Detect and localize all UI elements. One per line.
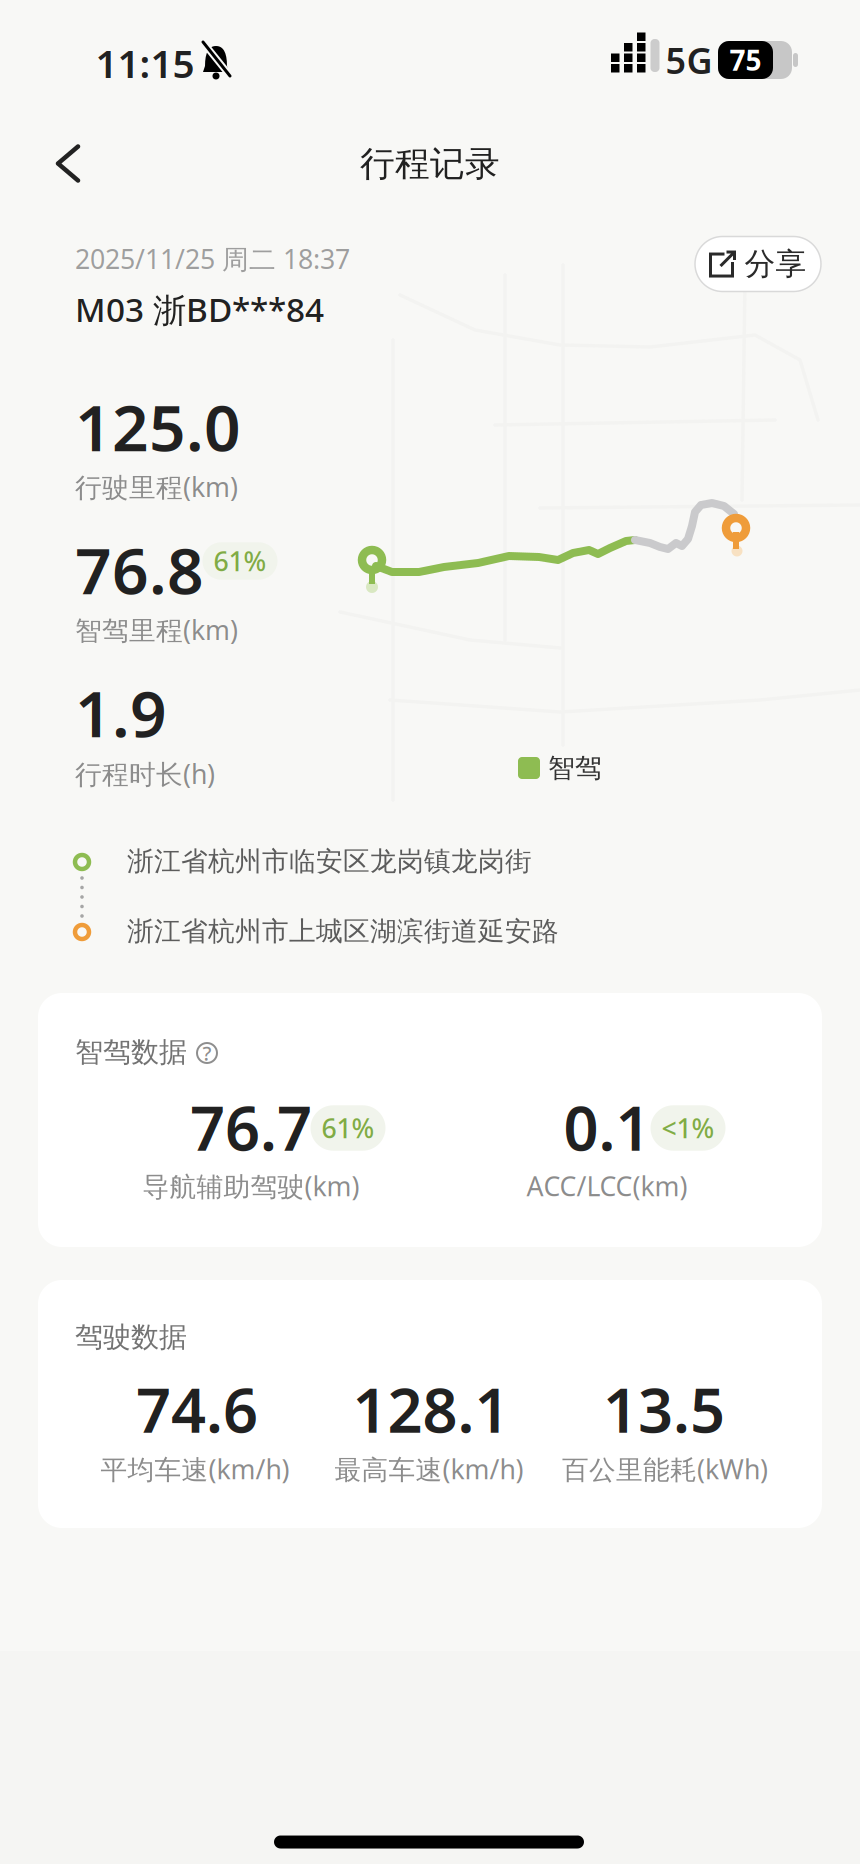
staticText: 驾驶数据 <box>75 1320 187 1354</box>
staticText: 13.5 <box>603 1368 725 1450</box>
staticText: 分享 <box>744 245 806 283</box>
staticText: 76.7 <box>190 1086 312 1168</box>
staticText: 最高车速(km/h) <box>334 1451 523 1487</box>
staticText: ACC/LCC(km) <box>526 1168 687 1204</box>
staticText: 74.6 <box>136 1368 258 1450</box>
staticText: 智驾 <box>548 752 602 784</box>
staticText: 百公里能耗(kWh) <box>562 1451 768 1487</box>
staticText: 浙江省杭州市临安区龙岗镇龙岗街 <box>127 845 532 878</box>
staticText: 76.8 <box>75 527 204 612</box>
staticText: M03 浙BD***84 <box>75 287 324 331</box>
staticText: 行驶里程(km) <box>75 469 238 504</box>
staticText: 5G <box>665 36 712 84</box>
staticText: 智驾数据 <box>75 1035 187 1069</box>
staticText: ? <box>202 1040 211 1066</box>
staticText: 智驾里程(km) <box>75 612 238 647</box>
staticText: 2025/11/25 周二 18:37 <box>75 241 350 276</box>
staticText: <1% <box>661 1110 714 1146</box>
staticText: 导航辅助驾驶(km) <box>142 1168 359 1204</box>
staticText: 125.0 <box>75 384 241 469</box>
staticText: 75 <box>729 41 761 79</box>
staticText: 128.1 <box>352 1368 509 1450</box>
staticText: 浙江省杭州市上城区湖滨街道延安路 <box>127 915 559 948</box>
staticText: 行程记录 <box>360 143 500 185</box>
staticText: 1.9 <box>75 670 167 755</box>
staticText: 61% <box>213 543 266 579</box>
staticText: 行程时长(h) <box>75 756 215 791</box>
button[interactable]: ? <box>194 1040 220 1066</box>
staticText: 平均车速(km/h) <box>100 1451 289 1487</box>
button[interactable]: 分享 <box>695 236 821 291</box>
staticText: 0.1 <box>563 1086 650 1168</box>
staticText: 61% <box>321 1110 374 1146</box>
staticText: 11:15 <box>95 37 194 89</box>
button[interactable] <box>46 141 90 185</box>
